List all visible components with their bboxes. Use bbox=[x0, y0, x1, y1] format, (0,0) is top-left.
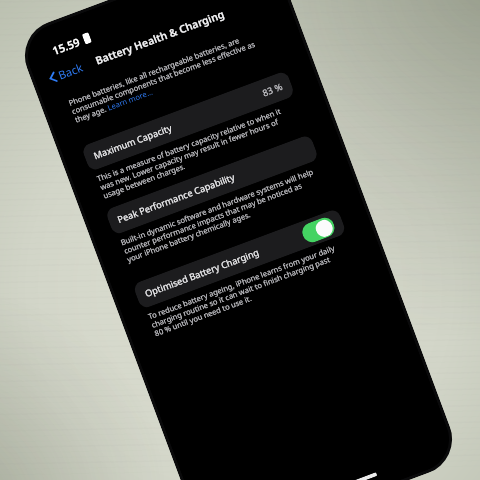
button[interactable]: Optimised Battery Charging toggle bbox=[299, 215, 337, 245]
staticText: This is a measure of battery capacity re… bbox=[95, 102, 299, 202]
staticText: Battery Health & Charging bbox=[93, 7, 227, 68]
staticText: To reduce battery ageing, iPhone learns … bbox=[147, 240, 351, 339]
button[interactable]: Maximum Capacity bbox=[81, 70, 295, 172]
button[interactable]: Phone batteries, like all rechargeable b… bbox=[67, 26, 271, 126]
button[interactable]: Optimised Battery Charging bbox=[132, 208, 347, 310]
staticText: 83 % bbox=[260, 80, 285, 99]
staticText: Back bbox=[56, 59, 86, 82]
button[interactable]: Back bbox=[44, 58, 88, 88]
staticText: 15.59 bbox=[50, 34, 82, 58]
staticText: Maximum Capacity bbox=[92, 121, 174, 162]
staticText: Optimised Battery Charging bbox=[143, 246, 261, 300]
staticText: Peak Performance Capability bbox=[115, 170, 237, 226]
button[interactable]: Peak Performance Capability bbox=[105, 134, 319, 236]
staticText: Built-in dynamic software and hardware s… bbox=[119, 166, 323, 265]
